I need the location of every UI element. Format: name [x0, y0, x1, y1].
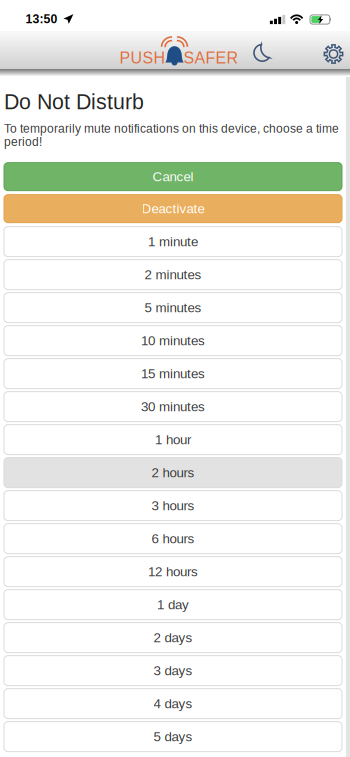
staticText: To temporarily mute notifications on thi…	[4, 122, 339, 149]
staticText: 10 minutes	[141, 333, 205, 348]
button[interactable]: 1 minute	[4, 227, 342, 257]
staticText: 1 minute	[148, 234, 198, 249]
button[interactable]: 6 hours	[4, 524, 342, 554]
staticText: 2 hours	[151, 465, 194, 480]
staticText: 5 days	[153, 729, 192, 744]
button[interactable]: 15 minutes	[4, 359, 342, 389]
staticText: Do Not Disturb	[4, 90, 144, 114]
button[interactable]: 4 days	[4, 689, 342, 719]
button[interactable]: 12 hours	[4, 557, 342, 587]
button[interactable]: 2 minutes	[4, 260, 342, 290]
staticText: 30 minutes	[141, 399, 205, 414]
button[interactable]: 5 minutes	[4, 293, 342, 323]
button[interactable]: 2 days	[4, 623, 342, 653]
staticText: PUSH	[119, 49, 165, 67]
button[interactable]: 3 hours	[4, 491, 342, 521]
staticText: 1 day	[157, 597, 189, 612]
button[interactable]: 1 hour	[4, 425, 342, 455]
staticText: 2 minutes	[144, 267, 201, 282]
staticText: 12 hours	[148, 564, 198, 579]
button[interactable]: Cancel	[4, 163, 342, 191]
button[interactable]: Settings	[316, 31, 350, 69]
staticText: 3 hours	[151, 498, 194, 513]
staticText: 4 days	[153, 696, 192, 711]
staticText: 5 minutes	[144, 300, 201, 315]
button[interactable]: 2 hours	[4, 458, 342, 488]
staticText: 2 days	[153, 630, 192, 645]
button[interactable]: 10 minutes	[4, 326, 342, 356]
staticText: 15 minutes	[141, 366, 205, 381]
staticText: Cancel	[152, 169, 193, 184]
button[interactable]: Do not disturb	[246, 31, 280, 69]
button[interactable]: 3 days	[4, 656, 342, 686]
staticText: Deactivate	[141, 201, 204, 216]
button[interactable]: 1 day	[4, 590, 342, 620]
staticText: 1 hour	[155, 432, 191, 447]
button[interactable]: 30 minutes	[4, 392, 342, 422]
staticText: 13:50	[25, 12, 57, 26]
staticText: 3 days	[153, 663, 192, 678]
button[interactable]: Deactivate	[4, 195, 342, 223]
staticText: 6 hours	[151, 531, 194, 546]
button[interactable]: 5 days	[4, 722, 342, 752]
staticText: SAFER	[183, 49, 238, 67]
